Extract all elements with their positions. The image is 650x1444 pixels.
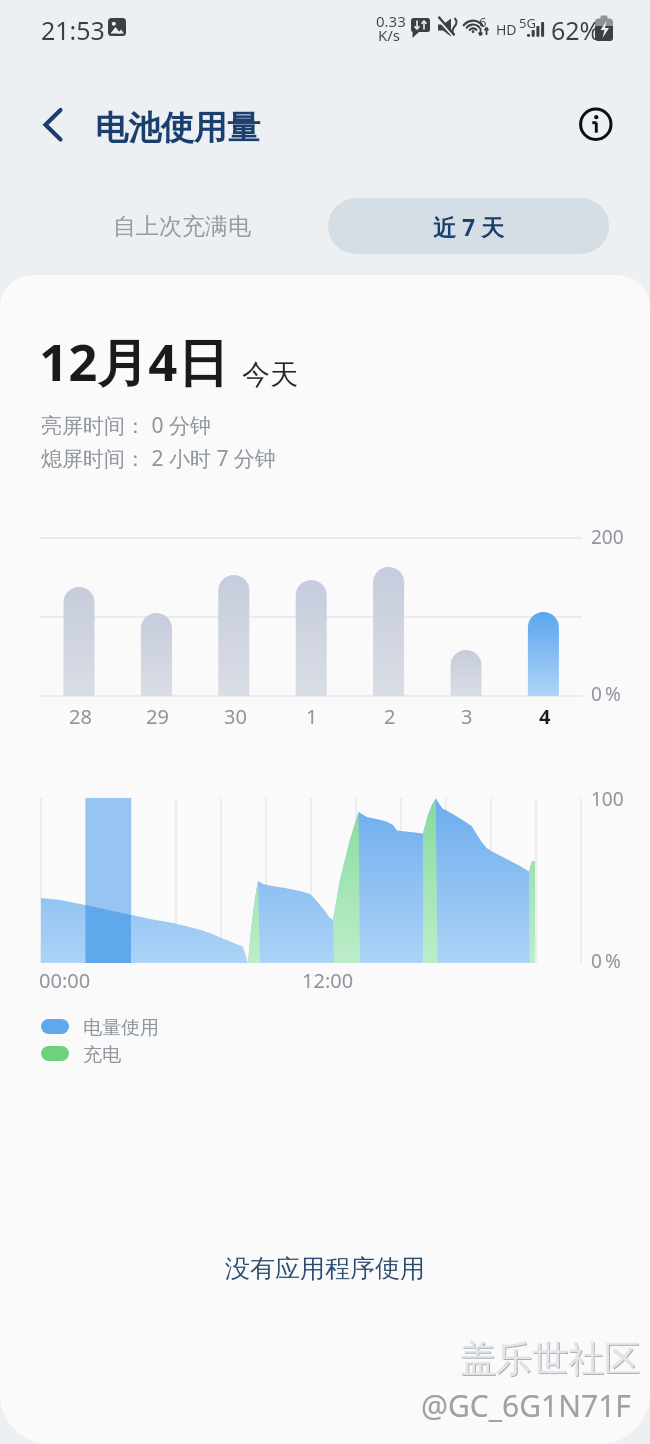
staticText: HD: [496, 20, 517, 39]
staticText: 5G: [519, 14, 536, 32]
button[interactable]: Information: [570, 99, 624, 153]
staticText: 充电: [83, 1043, 121, 1067]
staticText: 3: [461, 703, 473, 730]
staticText: 62%: [551, 13, 601, 47]
staticText: 12月4日: [39, 326, 229, 396]
staticText: 4: [539, 703, 551, 730]
staticText: 熄屏时间： 2 小时 7 分钟: [41, 444, 276, 473]
button[interactable]: Back: [26, 96, 90, 160]
staticText: 盖乐世社区: [460, 1336, 640, 1381]
staticText: 0.33: [376, 11, 406, 31]
staticText: 28: [69, 703, 92, 730]
staticText: 200: [591, 524, 624, 550]
staticText: 21:53: [41, 13, 105, 47]
staticText: 30: [224, 703, 247, 730]
staticText: 电量使用: [83, 1016, 159, 1040]
staticText: 1: [306, 703, 318, 730]
staticText: 12:00: [302, 967, 354, 994]
staticText: 电池使用量: [95, 107, 260, 149]
staticText: 0 %: [591, 948, 621, 974]
staticText: 今天: [242, 357, 298, 392]
staticText: 盖乐世社区: [461, 1337, 641, 1382]
staticText: 100: [591, 786, 624, 812]
staticText: 自上次充满电: [113, 212, 251, 241]
button[interactable]: 自上次充满电: [41, 198, 322, 254]
staticText: @GC_6G1N71F: [421, 1385, 631, 1426]
staticText: 亮屏时间： 0 分钟: [41, 411, 211, 440]
staticText: K/s: [378, 25, 401, 45]
button[interactable]: 近 7 天: [328, 198, 609, 254]
staticText: 6: [479, 13, 487, 31]
staticText: 2: [384, 703, 396, 730]
staticText: 没有应用程序使用: [0, 1253, 650, 1284]
staticText: 29: [146, 703, 169, 730]
staticText: 0 %: [591, 681, 621, 707]
staticText: 00:00: [39, 967, 91, 994]
staticText: 近 7 天: [433, 211, 505, 242]
